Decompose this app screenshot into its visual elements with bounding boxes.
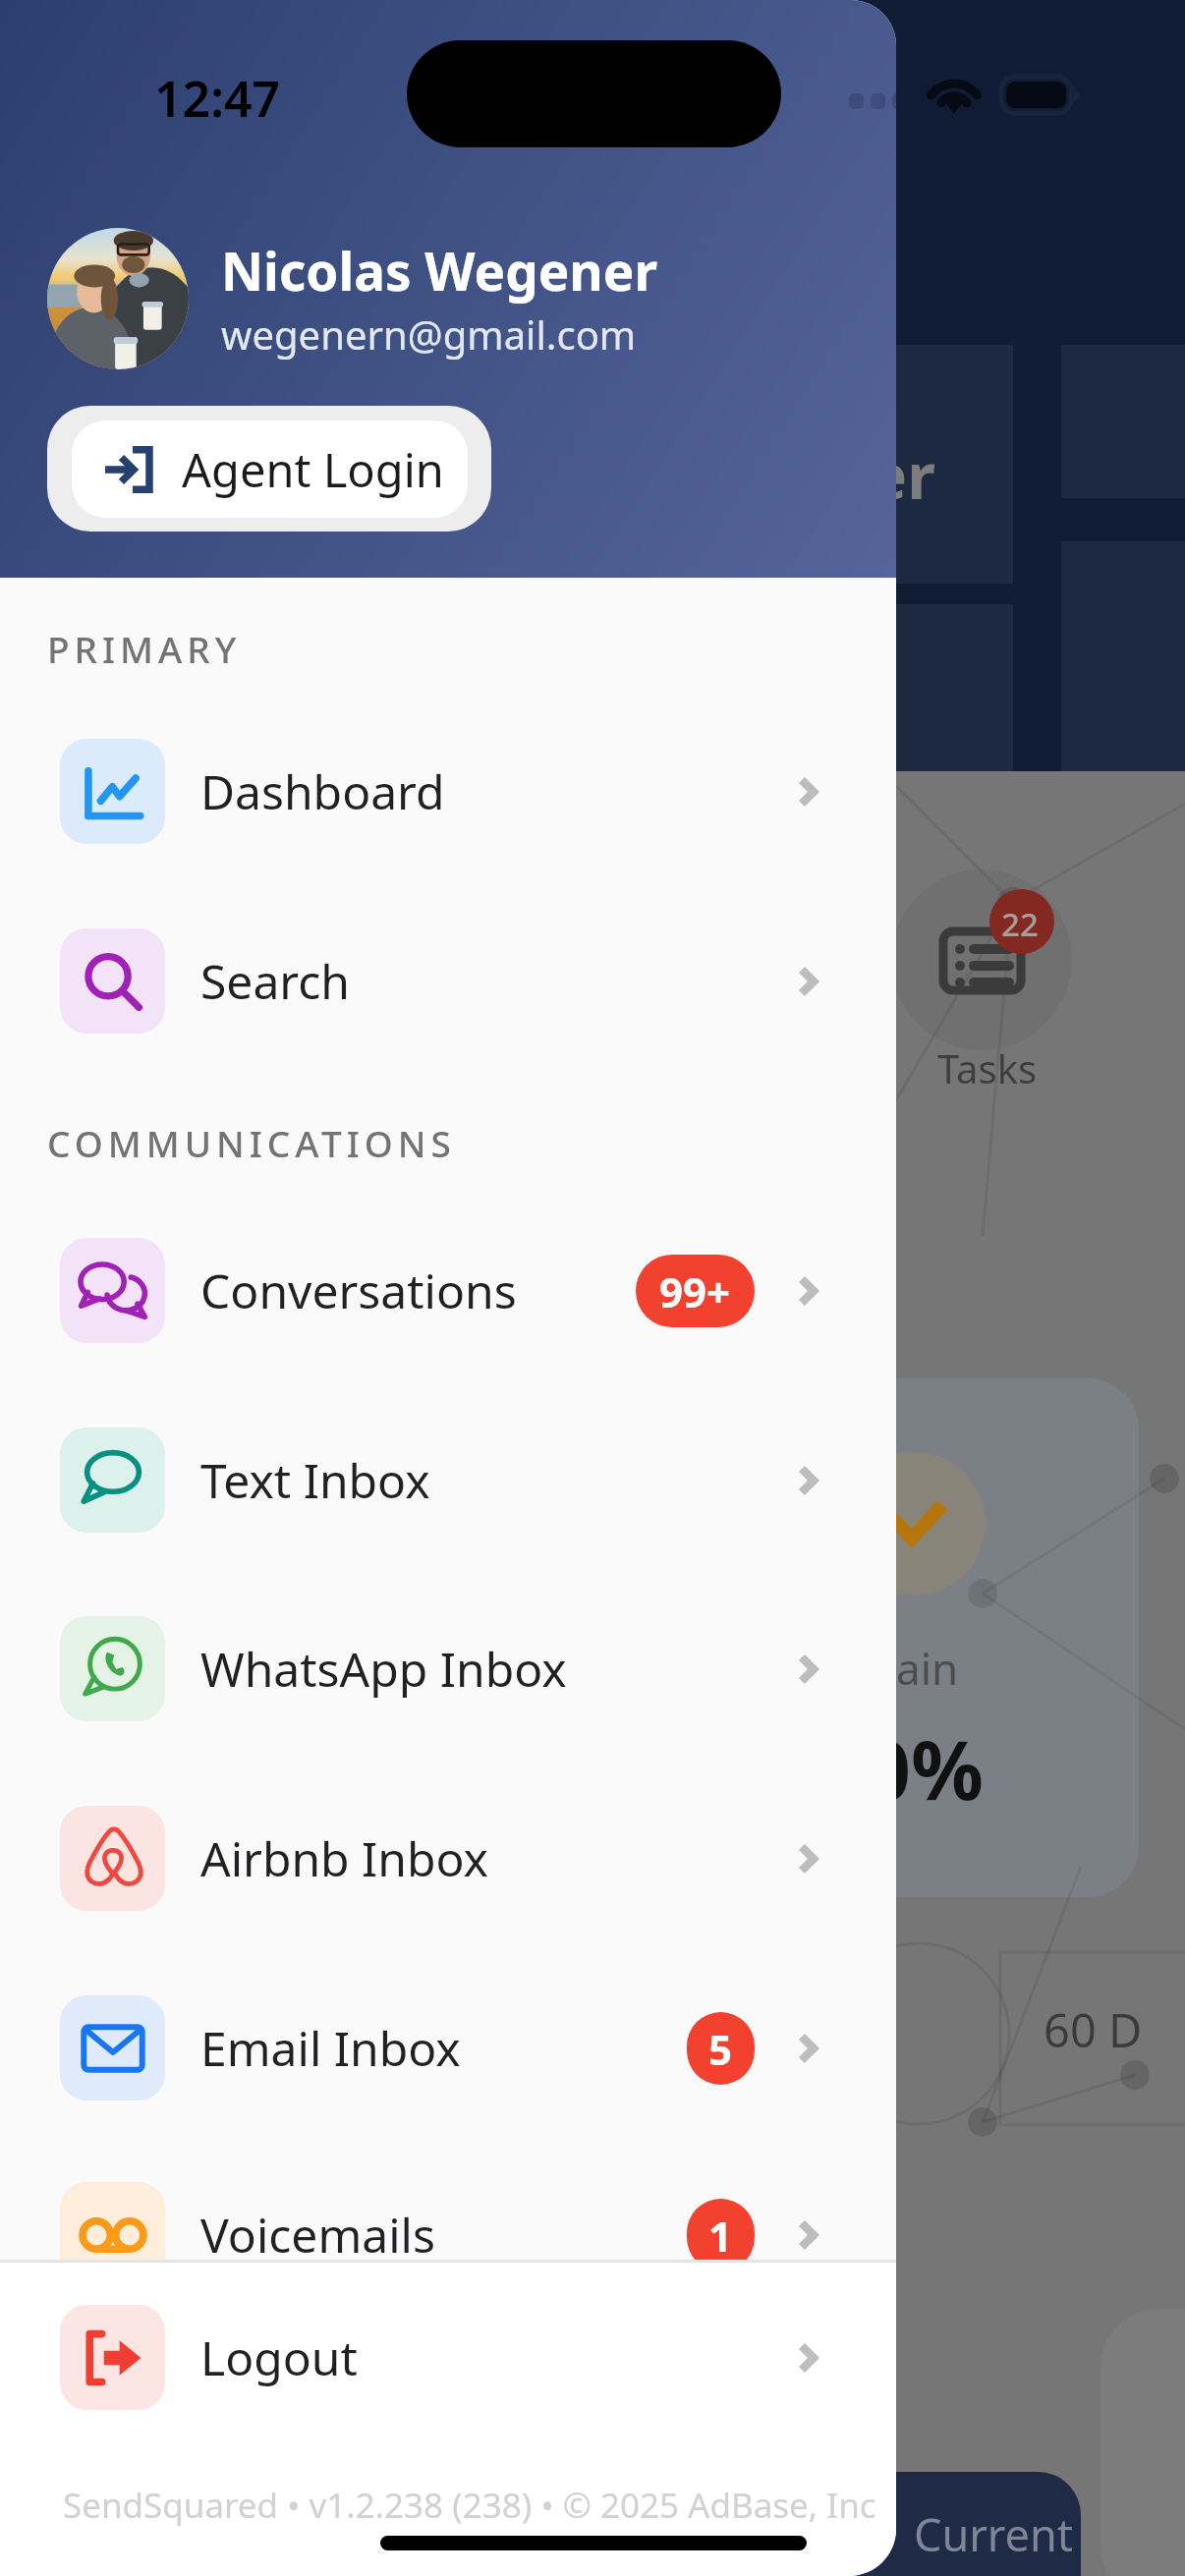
- staticText: Logout: [200, 2325, 358, 2389]
- button[interactable]: WhatsApp Inbox: [0, 1574, 896, 1764]
- staticText: Email Inbox: [200, 2016, 461, 2080]
- staticText: 12:47: [154, 65, 281, 132]
- staticText: 1: [708, 2208, 733, 2260]
- staticText: Agent Login: [182, 438, 444, 501]
- staticText: Airbnb Inbox: [200, 1826, 488, 1890]
- staticText: Text Inbox: [200, 1448, 430, 1512]
- staticText: Tasks: [937, 1041, 1038, 1094]
- staticText: 22: [1001, 902, 1039, 946]
- button[interactable]: Logout: [0, 2263, 896, 2452]
- staticText: wegenern@gmail.com: [221, 308, 637, 361]
- staticText: COMMUNICATIONS: [47, 1118, 456, 1167]
- staticText: Gain: [865, 1639, 959, 1698]
- staticText: Current: [914, 2504, 1073, 2564]
- staticText: 60 D: [1044, 1998, 1143, 2061]
- staticText: Welcome back, Nicolas Wegener: [0, 432, 935, 518]
- button[interactable]: Dashboard: [0, 697, 896, 886]
- staticText: Nicolas Wegener: [221, 235, 658, 306]
- button[interactable]: Airbnb Inbox: [0, 1764, 896, 1953]
- staticText: WhatsApp Inbox: [200, 1637, 567, 1701]
- staticText: Dashboard: [200, 759, 445, 823]
- button[interactable]: Email Inbox: [0, 1953, 896, 2143]
- button[interactable]: Close navigation drawer: [896, 0, 1185, 2576]
- staticText: 0%: [865, 1713, 984, 1823]
- staticText: PRIMARY: [47, 624, 242, 673]
- button[interactable]: Search: [0, 886, 896, 1076]
- button[interactable]: Text Inbox: [0, 1385, 896, 1575]
- staticText: 99+: [659, 1263, 731, 1319]
- button[interactable]: Conversations: [0, 1196, 896, 1385]
- button[interactable]: Agent Login: [47, 406, 491, 532]
- staticText: Search: [200, 949, 350, 1013]
- staticText: SendSquared • v1.2.238 (238) • © 2025 Ad…: [63, 2482, 876, 2529]
- staticText: Voicemails: [200, 2203, 435, 2260]
- button[interactable]: Voicemails: [0, 2140, 896, 2260]
- button[interactable]: Profile photo of Nicolas Wegener: [47, 228, 189, 369]
- staticText: 5: [708, 2021, 733, 2077]
- staticText: Conversations: [200, 1259, 517, 1322]
